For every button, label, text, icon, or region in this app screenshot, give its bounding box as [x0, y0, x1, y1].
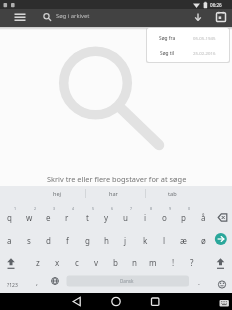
button[interactable]: f [58, 231, 76, 249]
button[interactable]: z [29, 253, 47, 271]
button[interactable]: d [39, 231, 57, 249]
button[interactable] [211, 253, 230, 271]
button[interactable] [10, 10, 32, 28]
staticText: g [85, 235, 90, 246]
button[interactable] [38, 10, 158, 28]
button[interactable]: j [116, 231, 134, 249]
button[interactable]: hej [42, 187, 72, 201]
staticText: i [144, 212, 147, 223]
staticText: d [46, 235, 51, 246]
button[interactable]: å [194, 208, 212, 226]
button[interactable]: ?123 [1, 278, 23, 292]
button[interactable]: . [184, 276, 214, 290]
button[interactable]: g [78, 231, 96, 249]
staticText: y [104, 212, 109, 223]
staticText: , [36, 278, 38, 288]
button[interactable] [63, 293, 91, 310]
staticText: ! [172, 257, 175, 268]
staticText: w [26, 212, 33, 223]
button[interactable] [147, 45, 229, 62]
staticText: 6 [111, 206, 114, 211]
button[interactable]: k [136, 231, 154, 249]
button[interactable] [2, 253, 20, 271]
button[interactable]: q [0, 208, 18, 226]
button[interactable]: p [174, 208, 192, 226]
button[interactable]: a [0, 231, 18, 249]
staticText: æ [180, 235, 187, 246]
staticText: å [201, 212, 206, 223]
staticText: e [46, 212, 51, 223]
button[interactable]: , [22, 276, 52, 290]
button[interactable]: r [58, 208, 76, 226]
staticText: 5 [92, 206, 95, 211]
staticText: 8 [150, 206, 153, 211]
staticText: tab [168, 190, 177, 198]
button[interactable]: c [68, 253, 86, 271]
staticText: p [181, 212, 186, 223]
staticText: Skriv tre eller flere bogstaver for at s… [47, 174, 187, 184]
button[interactable] [147, 28, 229, 45]
button[interactable]: t [78, 208, 96, 226]
staticText: f [66, 235, 69, 246]
staticText: 06:26 [210, 2, 222, 8]
button[interactable]: tab [157, 187, 187, 201]
staticText: Dansk [120, 278, 134, 284]
staticText: o [162, 212, 167, 223]
button[interactable] [212, 208, 232, 226]
button[interactable]: l [155, 231, 173, 249]
staticText: 2 [34, 206, 37, 211]
button[interactable]: ! [164, 253, 182, 271]
staticText: 7 [130, 206, 133, 211]
staticText: n [132, 257, 137, 268]
button[interactable]: n [125, 253, 143, 271]
staticText: 1 [14, 206, 17, 211]
button[interactable] [211, 10, 232, 28]
button[interactable] [188, 10, 208, 28]
button[interactable]: s [20, 231, 38, 249]
staticText: 25-02-2016 [193, 50, 216, 56]
button[interactable] [102, 293, 130, 310]
button[interactable]: Dansk [107, 274, 147, 288]
staticText: t [86, 212, 89, 223]
button[interactable] [141, 293, 169, 310]
button[interactable] [212, 276, 232, 292]
staticText: v [94, 257, 99, 268]
staticText: . [198, 278, 200, 288]
staticText: 9 [169, 206, 172, 211]
staticText: j [124, 235, 127, 246]
staticText: a [7, 235, 12, 246]
staticText: x [55, 257, 60, 268]
button[interactable]: x [48, 253, 66, 271]
staticText: u [123, 212, 128, 223]
button[interactable]: w [20, 208, 38, 226]
staticText: ?123 [7, 282, 18, 289]
button[interactable]: ø [194, 231, 212, 249]
button[interactable]: y [97, 208, 115, 226]
staticText: 3 [53, 206, 56, 211]
button[interactable]: e [39, 208, 57, 226]
button[interactable]: b [106, 253, 124, 271]
staticText: Søg fra [159, 35, 176, 42]
staticText: r [65, 212, 69, 223]
button[interactable]: o [155, 208, 173, 226]
button[interactable]: i [136, 208, 154, 226]
button[interactable]: ? [183, 253, 201, 271]
button[interactable]: har [98, 187, 128, 201]
staticText: har [109, 190, 118, 198]
staticText: m [149, 257, 157, 268]
button[interactable] [212, 230, 232, 248]
button[interactable]: h [97, 231, 115, 249]
staticText: Søg i arkivet [56, 12, 90, 20]
button[interactable]: v [87, 253, 105, 271]
button[interactable] [46, 272, 64, 290]
staticText: 4 [72, 206, 75, 211]
button[interactable]: æ [174, 231, 192, 249]
staticText: s [27, 235, 31, 246]
staticText: h [104, 235, 109, 246]
button[interactable] [212, 293, 232, 310]
staticText: 0 [188, 206, 191, 211]
staticText: z [36, 257, 40, 268]
button[interactable]: m [144, 253, 162, 271]
button[interactable]: u [116, 208, 134, 226]
button[interactable] [66, 274, 189, 288]
